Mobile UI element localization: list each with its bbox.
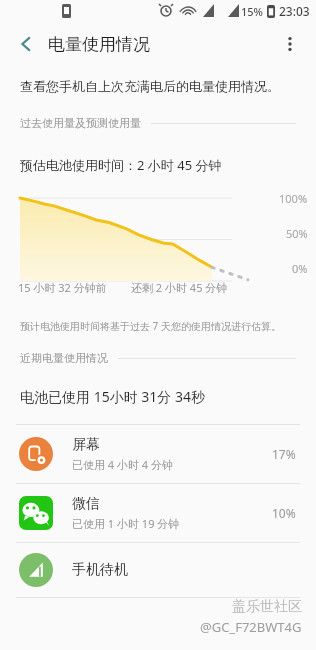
staticText: 电量使用情况 xyxy=(48,34,150,55)
staticText: 微信 xyxy=(72,495,100,513)
staticText: 预估电池使用时间：2 小时 45 分钟 xyxy=(20,156,222,174)
staticText: 还剩 2 小时 45 分钟 xyxy=(131,280,228,295)
staticText: 100% xyxy=(279,191,308,206)
button[interactable]: 更多选项 xyxy=(270,24,310,64)
button[interactable]: 屏幕 xyxy=(0,425,316,483)
staticText: 0% xyxy=(292,261,308,276)
staticText: 15 小时 32 分钟前 xyxy=(18,280,107,295)
staticText: @GC_F72BWT4G xyxy=(200,618,302,636)
staticText: 预计电池使用时间将基于过去 7 天您的使用情况进行估算。 xyxy=(20,319,281,333)
button[interactable]: 手机待机 xyxy=(0,543,316,597)
staticText: 过去使用量及预测使用量 xyxy=(20,116,141,130)
staticText: 屏幕 xyxy=(72,436,100,454)
staticText: 10% xyxy=(272,505,296,521)
staticText: 已使用 4 小时 4 分钟 xyxy=(72,457,174,472)
staticText: 50% xyxy=(286,226,308,241)
staticText: 23:03 xyxy=(279,3,310,19)
staticText: 盖乐世社区 xyxy=(232,598,302,616)
button[interactable]: 微信 xyxy=(0,484,316,542)
staticText: 查看您手机自上次充满电后的电量使用情况。 xyxy=(20,78,280,94)
staticText: 电池已使用 15小时 31分 34秒 xyxy=(20,387,205,406)
staticText: 15% xyxy=(241,4,263,19)
staticText: 已使用 1 小时 19 分钟 xyxy=(72,516,180,531)
staticText: 17% xyxy=(272,446,296,462)
staticText: 近期电量使用情况 xyxy=(20,351,108,365)
button[interactable]: 返回 xyxy=(8,26,44,62)
staticText: 手机待机 xyxy=(72,561,128,579)
